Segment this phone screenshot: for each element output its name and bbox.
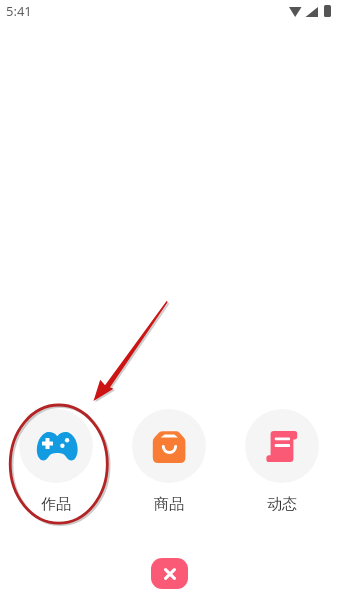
- staticText: 5:41: [6, 2, 32, 20]
- button[interactable]: 动态: [225, 409, 338, 514]
- staticText: 动态: [267, 495, 297, 514]
- staticText: 商品: [154, 495, 184, 514]
- staticText: 作品: [41, 495, 71, 514]
- button[interactable]: 作品: [0, 409, 112, 514]
- button[interactable]: Close: [151, 558, 188, 589]
- button[interactable]: 商品: [112, 409, 225, 514]
